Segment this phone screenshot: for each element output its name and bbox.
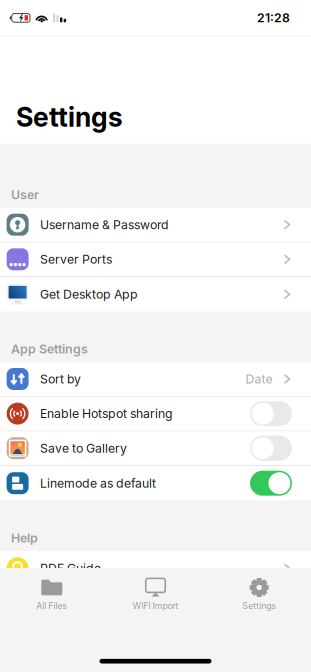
button[interactable]: Enable Hotspot sharing xyxy=(0,397,311,431)
button[interactable]: Settings xyxy=(207,568,311,617)
staticText: Get Desktop App xyxy=(40,287,138,302)
staticText: Server Ports xyxy=(40,252,112,267)
staticText: All Files xyxy=(36,600,67,611)
button[interactable]: PDF Guide xyxy=(0,551,311,586)
staticText: Settings xyxy=(242,600,276,611)
staticText: Date xyxy=(245,372,272,386)
staticText: User xyxy=(11,187,39,202)
staticText: Linemode as default xyxy=(40,476,156,491)
staticText: Username & Password xyxy=(40,217,169,232)
staticText: Enable Hotspot sharing xyxy=(40,406,173,421)
button[interactable]: Sort by xyxy=(0,362,311,397)
button[interactable]: Username & Password xyxy=(0,208,311,242)
staticText: PDF Guide xyxy=(40,561,101,576)
button[interactable]: Linemode as default xyxy=(0,466,311,500)
button[interactable]: WIFI Import xyxy=(104,568,207,617)
staticText: Help xyxy=(11,530,38,545)
button[interactable]: All Files xyxy=(0,568,104,617)
staticText: Settings xyxy=(16,101,123,133)
staticText: Sort by xyxy=(40,372,81,386)
staticText: Save to Gallery xyxy=(40,441,127,456)
staticText: 21:28 xyxy=(257,10,290,25)
button[interactable]: Get Desktop App xyxy=(0,277,311,312)
staticText: App Settings xyxy=(11,342,88,357)
staticText: WIFI Import xyxy=(132,600,178,611)
button[interactable]: Server Ports xyxy=(0,242,311,277)
button[interactable]: Save to Gallery xyxy=(0,431,311,466)
